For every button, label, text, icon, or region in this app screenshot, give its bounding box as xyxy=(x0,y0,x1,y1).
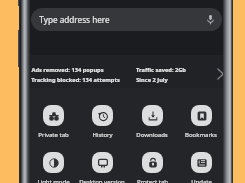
staticText: Light mode xyxy=(37,178,70,183)
button[interactable]: Downloads xyxy=(128,105,176,139)
staticText: Desktop version xyxy=(79,178,125,183)
button[interactable]: Protect tab xyxy=(128,152,176,183)
staticText: Protect tab xyxy=(137,178,168,183)
button[interactable]: Bookmarks xyxy=(177,105,225,139)
other: Details xyxy=(217,68,224,80)
staticText: Since 2 July xyxy=(136,76,168,84)
staticText: Private tab xyxy=(38,131,69,139)
staticText: Type address here xyxy=(39,14,110,25)
staticText: Update xyxy=(191,178,212,183)
staticText: Traffic saved: 2Gb xyxy=(136,66,186,74)
button[interactable]: Light mode xyxy=(29,152,77,183)
button[interactable]: Update xyxy=(177,152,225,183)
staticText: History xyxy=(92,131,113,139)
button[interactable]: Ads removed: 134 popups xyxy=(30,55,223,88)
button[interactable]: Type address here xyxy=(31,8,222,31)
button[interactable]: Private tab xyxy=(29,105,77,139)
staticText: Bookmarks xyxy=(185,131,217,139)
staticText: Ads removed: 134 popups xyxy=(31,66,104,74)
button[interactable]: Desktop version xyxy=(78,152,126,183)
staticText: Tracking blocked: 134 attempts xyxy=(31,76,120,84)
other: Voice search xyxy=(205,14,216,25)
staticText: Downloads xyxy=(136,131,168,139)
button[interactable]: History xyxy=(78,105,126,139)
